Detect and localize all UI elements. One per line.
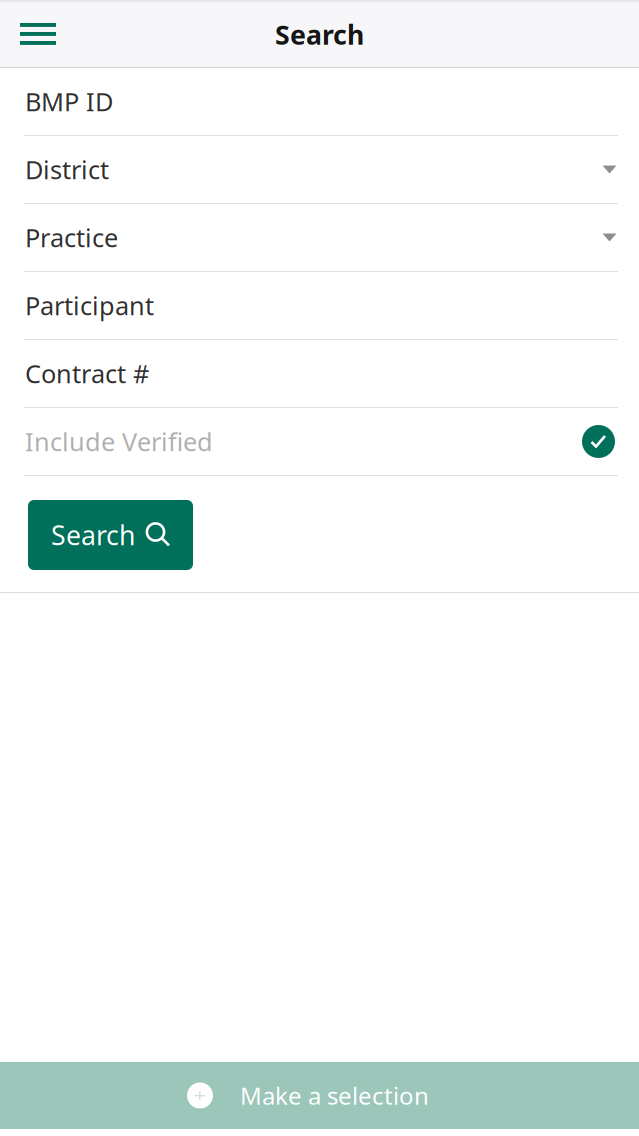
staticText: Make a selection bbox=[240, 1080, 429, 1111]
button[interactable]: Contract # bbox=[0, 340, 639, 408]
button[interactable]: District bbox=[0, 136, 639, 204]
staticText: Search bbox=[275, 17, 364, 52]
button[interactable]: Search bbox=[28, 500, 193, 570]
staticText: District bbox=[25, 153, 109, 186]
staticText: Search bbox=[51, 517, 135, 553]
staticText: Participant bbox=[25, 289, 154, 322]
staticText: Contract # bbox=[25, 357, 149, 390]
button[interactable]: Make a selection bbox=[0, 1062, 639, 1129]
button[interactable]: Participant bbox=[0, 272, 639, 340]
button[interactable]: Menu bbox=[0, 1, 78, 68]
button[interactable]: Practice bbox=[0, 204, 639, 272]
button[interactable]: BMP ID bbox=[0, 68, 639, 136]
staticText: Practice bbox=[25, 221, 118, 254]
staticText: BMP ID bbox=[25, 85, 113, 118]
staticText: Include Verified bbox=[25, 425, 213, 458]
button[interactable]: Include Verified bbox=[0, 408, 639, 476]
